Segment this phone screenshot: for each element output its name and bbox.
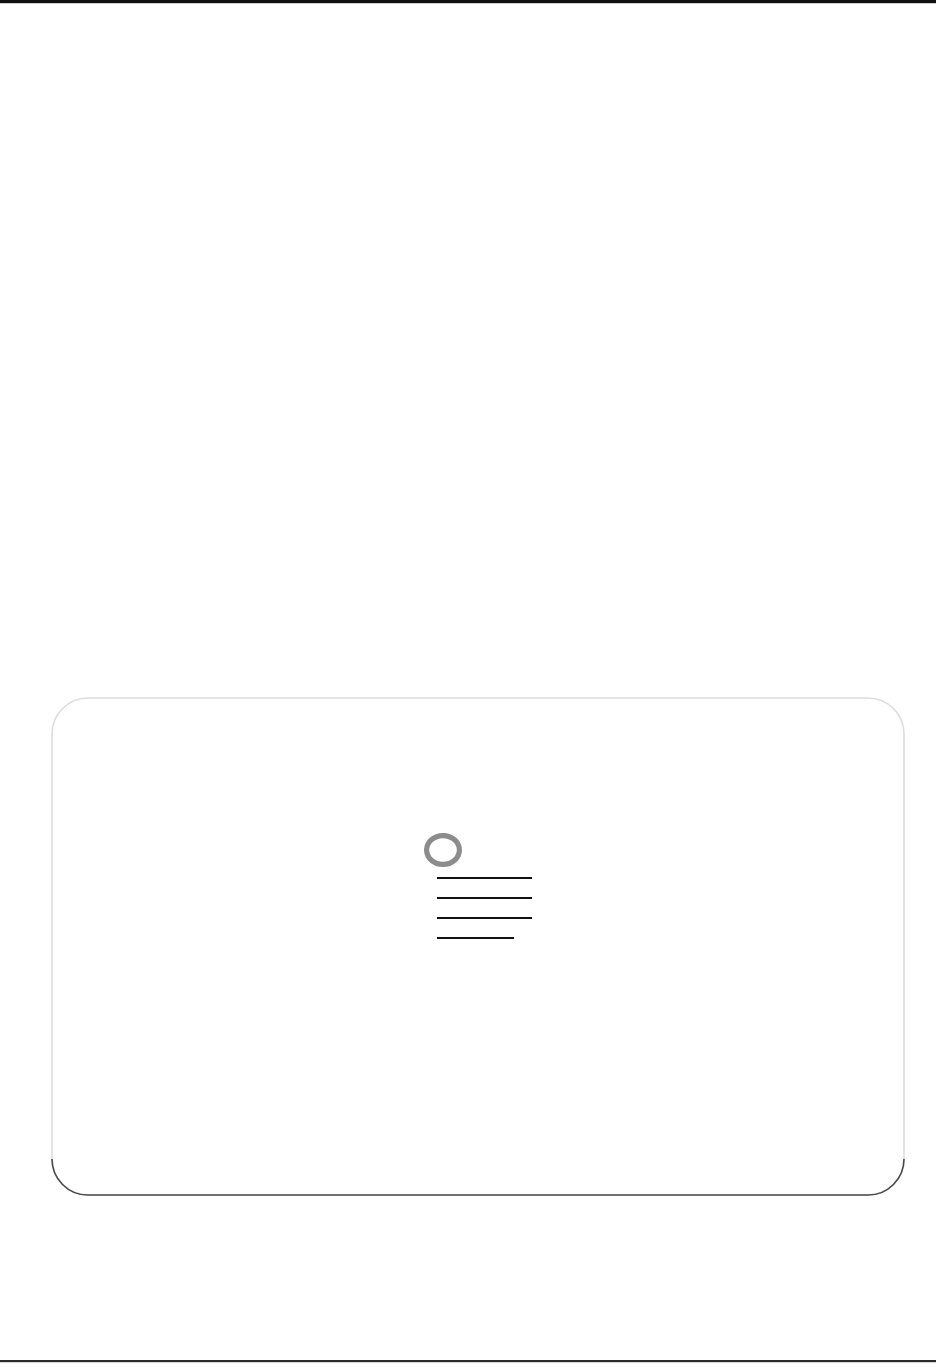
button[interactable]: Document page with note card	[0, 0, 936, 1369]
